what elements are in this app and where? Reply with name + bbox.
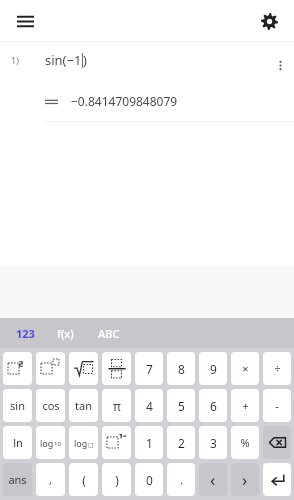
button[interactable]: ENTER <box>263 463 291 496</box>
button[interactable]: More options <box>266 51 294 79</box>
button[interactable]: 8 <box>167 352 195 385</box>
button[interactable]: % <box>231 426 259 459</box>
button[interactable]: POW <box>36 352 65 385</box>
button[interactable]: ABC <box>92 318 126 348</box>
button[interactable]: Settings <box>254 6 284 36</box>
staticText: −0.8414709848079 <box>71 93 178 109</box>
staticText: ) <box>115 472 119 488</box>
staticText: 7 <box>146 361 153 377</box>
staticText: ln <box>13 435 23 450</box>
button[interactable]: GT <box>231 463 259 496</box>
staticText: tan <box>75 398 92 413</box>
staticText: + <box>242 398 249 413</box>
button[interactable]: , <box>36 463 65 496</box>
staticText: 2 <box>178 435 185 451</box>
staticText: cos <box>42 398 60 413</box>
staticText: ÷ <box>274 361 281 376</box>
staticText: log <box>40 437 54 449</box>
staticText: 123 <box>16 326 35 341</box>
button[interactable]: 4 <box>135 389 163 422</box>
button[interactable]: log <box>36 426 65 459</box>
button[interactable]: log <box>69 426 98 459</box>
button[interactable]: ( <box>69 463 98 496</box>
button[interactable]: ln <box>3 426 32 459</box>
button[interactable]: ) <box>102 463 131 496</box>
staticText: sin(−1 <box>45 51 82 69</box>
button[interactable]: + <box>231 389 259 422</box>
button[interactable]: - <box>263 389 291 422</box>
staticText: % <box>240 435 250 450</box>
staticText: 1) <box>11 54 19 66</box>
button[interactable]: 6 <box>199 389 227 422</box>
staticText: › <box>242 468 248 491</box>
button[interactable]: SQRT <box>69 352 98 385</box>
staticText: 4 <box>146 398 153 414</box>
staticText: 6 <box>210 398 217 414</box>
staticText: 3 <box>210 435 217 451</box>
button[interactable]: f(x) <box>51 318 80 348</box>
staticText: ( <box>82 472 86 488</box>
staticText: sin <box>10 398 25 413</box>
button[interactable]: 123 <box>10 318 41 348</box>
button[interactable]: cos <box>36 389 65 422</box>
button[interactable]: 9 <box>199 352 227 385</box>
staticText: 10 <box>54 440 61 448</box>
staticText: 0 <box>146 472 153 488</box>
staticText: f(x) <box>57 326 74 341</box>
button[interactable]: 1 <box>135 426 163 459</box>
staticText: × <box>242 361 249 376</box>
button[interactable]: FRAC <box>102 352 131 385</box>
staticText: 5 <box>178 398 185 414</box>
staticText: ‹ <box>210 468 216 491</box>
button[interactable]: SQ <box>3 352 32 385</box>
button[interactable]: tan <box>69 389 98 422</box>
button[interactable]: sin <box>3 389 32 422</box>
staticText: , <box>49 472 52 487</box>
button[interactable]: Menu <box>10 6 40 36</box>
staticText: ans <box>8 472 27 487</box>
button[interactable]: INV <box>102 426 131 459</box>
button[interactable]: 0 <box>135 463 163 496</box>
button[interactable]: π <box>102 389 131 422</box>
staticText: 1 <box>146 435 153 451</box>
button[interactable]: BACK <box>263 426 291 459</box>
staticText: log <box>74 437 88 449</box>
staticText: 9 <box>210 361 217 377</box>
staticText: - <box>275 398 279 413</box>
staticText: □ <box>88 441 94 448</box>
staticText: π <box>113 398 121 414</box>
staticText: ABC <box>98 326 120 341</box>
button[interactable]: 7 <box>135 352 163 385</box>
button[interactable]: 5 <box>167 389 195 422</box>
button[interactable]: × <box>231 352 259 385</box>
staticText: 8 <box>178 361 185 377</box>
button[interactable]: ans <box>3 463 32 496</box>
button[interactable]: ÷ <box>263 352 291 385</box>
button[interactable]: 3 <box>199 426 227 459</box>
staticText: . <box>180 472 183 487</box>
button[interactable]: LT <box>199 463 227 496</box>
button[interactable]: . <box>167 463 195 496</box>
staticText: ) <box>83 51 87 69</box>
button[interactable]: 2 <box>167 426 195 459</box>
